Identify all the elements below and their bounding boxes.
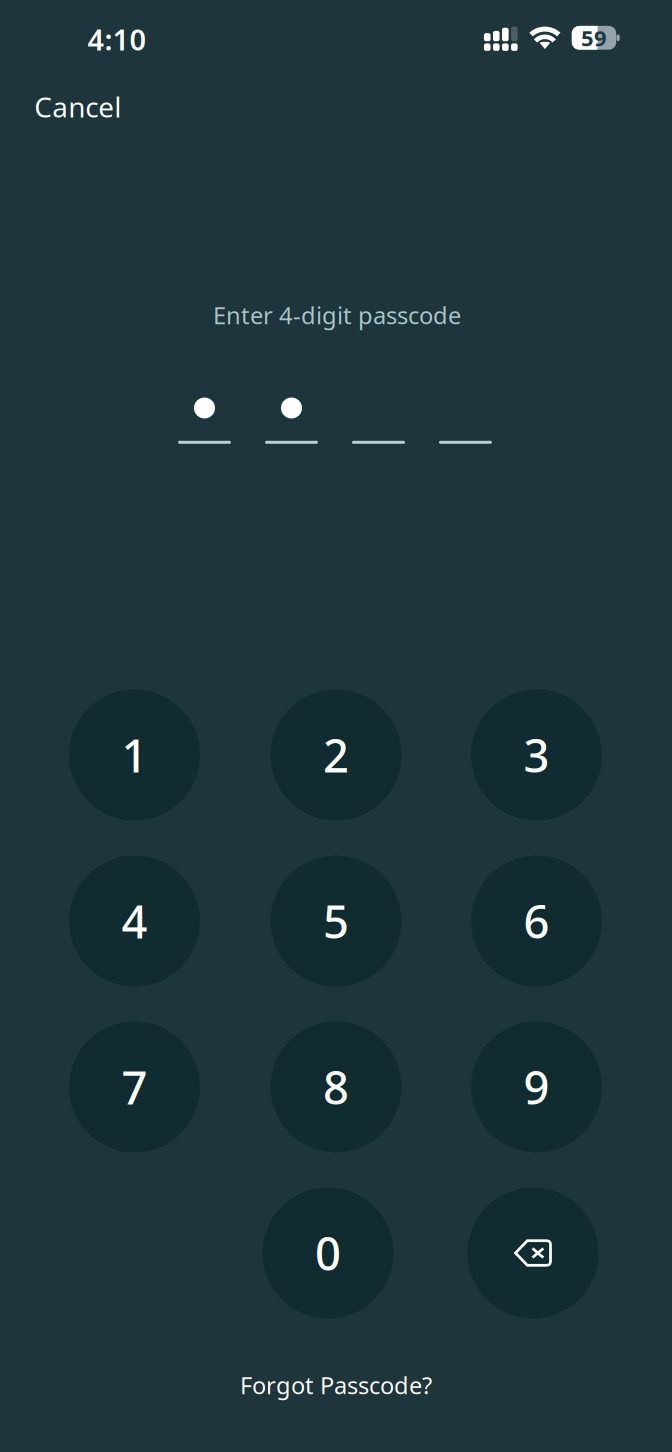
staticText: Enter 4-digit passcode [213,299,461,331]
staticText: Cancel [34,88,121,126]
staticText: 4 [121,890,147,952]
staticText: 1 [121,724,147,786]
button[interactable]: 9 [471,1021,602,1152]
button[interactable]: 0 [262,1187,393,1318]
staticText: 59 [581,23,607,53]
staticText: 4:10 [87,19,146,59]
staticText: Forgot Passcode? [240,1369,432,1401]
button[interactable]: 7 [69,1021,200,1152]
button[interactable]: 5 [270,855,401,986]
staticText: 8 [323,1056,349,1118]
button[interactable]: 1 [69,689,200,820]
staticText: 9 [523,1056,549,1118]
button[interactable]: 6 [471,855,602,986]
staticText: 6 [523,890,549,952]
staticText: 0 [315,1222,341,1284]
button[interactable]: Cancel [34,79,154,135]
button[interactable]: 2 [270,689,401,820]
button[interactable]: 4 [69,855,200,986]
staticText: 7 [121,1056,147,1118]
staticText: 5 [323,890,349,952]
button[interactable]: Delete [467,1187,598,1318]
button[interactable]: 8 [270,1021,401,1152]
button[interactable]: Forgot Passcode? [206,1360,466,1410]
staticText: 2 [323,724,349,786]
button[interactable]: 3 [471,689,602,820]
staticText: 3 [523,724,549,786]
